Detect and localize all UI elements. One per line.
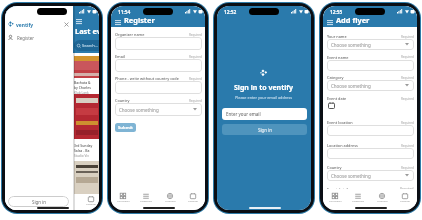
button[interactable]: Sign in: [222, 124, 307, 135]
button[interactable]: Locations: [371, 189, 393, 206]
staticText: Sign in to ventify: [234, 83, 294, 93]
staticText: Categories: [352, 199, 365, 202]
staticText: 3rd Sunday: [74, 143, 93, 148]
staticText: Required: [189, 33, 202, 37]
button[interactable]: Register: [8, 33, 68, 42]
button[interactable]: [327, 148, 414, 159]
button[interactable]: [115, 81, 202, 94]
staticText: Add flyer: [336, 15, 370, 25]
staticText: Event name: [327, 55, 349, 60]
staticText: 11:54: [118, 9, 131, 16]
staticText: Sign in: [32, 199, 46, 205]
staticText: Email: [115, 54, 125, 59]
staticText: Calendar: [86, 202, 97, 205]
staticText: Event details: [327, 187, 351, 192]
staticText: Last events: [117, 199, 130, 202]
staticText: Studio Viv: [74, 154, 89, 158]
staticText: Choose something: [331, 83, 371, 89]
staticText: Last events: [329, 199, 342, 202]
button[interactable]: Calendar: [394, 189, 416, 206]
staticText: Required: [401, 35, 414, 39]
staticText: Category: [327, 75, 344, 80]
staticText: Required: [401, 76, 414, 80]
staticText: Categories: [140, 199, 153, 202]
staticText: 12:52: [224, 9, 237, 16]
staticText: ventify: [16, 22, 34, 29]
staticText: Please enter your email address: [235, 95, 293, 100]
staticText: Sign in: [258, 127, 272, 133]
button[interactable]: Choose something: [327, 39, 414, 50]
staticText: Organizer name: [115, 32, 145, 37]
staticText: Required: [401, 166, 414, 170]
button[interactable]: Last events: [112, 189, 134, 206]
staticText: Your name: [327, 34, 347, 39]
staticText: Last events: [75, 26, 99, 36]
staticText: Required: [400, 187, 414, 191]
button[interactable]: [115, 59, 202, 72]
staticText: Location address: [327, 143, 358, 148]
staticText: Register: [124, 15, 155, 25]
button[interactable]: Choose something: [115, 103, 202, 116]
button[interactable]: Categories: [347, 189, 369, 206]
staticText: Event date: [327, 96, 347, 101]
staticText: Required: [189, 77, 202, 81]
button[interactable]: Locations: [159, 189, 181, 206]
staticText: Salsa - Ba: [74, 148, 90, 153]
staticText: Required: [401, 55, 414, 59]
staticText: Required: [401, 121, 414, 125]
button[interactable]: Enter your email: [222, 108, 307, 120]
staticText: Submit: [118, 125, 133, 131]
staticText: Bachata &: [74, 80, 91, 85]
staticText: Country: [115, 98, 130, 103]
button[interactable]: Calendar: [182, 189, 204, 206]
button[interactable]: Choose something: [327, 80, 414, 91]
staticText: Klub Lank: [74, 91, 89, 95]
staticText: Locations: [165, 199, 176, 202]
staticText: Calendar: [188, 199, 199, 202]
staticText: Register: [17, 35, 35, 41]
staticText: Required: [401, 144, 414, 148]
button[interactable]: [327, 60, 414, 71]
staticText: Required: [189, 55, 202, 59]
staticText: by Charles: [74, 85, 91, 90]
button[interactable]: [327, 125, 414, 136]
staticText: Enter your email: [226, 111, 261, 117]
staticText: Calendar: [400, 199, 411, 202]
staticText: Choose something: [331, 42, 371, 48]
staticText: Locations: [377, 199, 388, 202]
staticText: Choose something: [331, 173, 371, 179]
staticText: Event location: [327, 120, 353, 125]
staticText: 12:55: [330, 9, 343, 16]
button[interactable]: Submit: [115, 123, 136, 132]
staticText: Required: [401, 97, 414, 101]
button[interactable]: [115, 37, 202, 50]
staticText: Country: [327, 165, 342, 170]
staticText: Required: [189, 99, 202, 103]
staticText: Phone - write without country code: [115, 76, 179, 81]
button[interactable]: Categories: [135, 189, 157, 206]
staticText: Choose something: [119, 107, 159, 113]
staticText: Search...: [82, 43, 98, 48]
button[interactable]: Sign in: [8, 196, 69, 207]
button[interactable]: Choose something: [327, 170, 414, 181]
button[interactable]: Last events: [324, 189, 346, 206]
